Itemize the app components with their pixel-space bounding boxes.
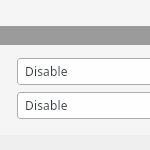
button[interactable]: Disable <box>17 92 150 119</box>
staticText: Disable <box>25 63 68 79</box>
button[interactable]: Disable <box>17 58 150 85</box>
staticText: Disable <box>25 97 68 113</box>
